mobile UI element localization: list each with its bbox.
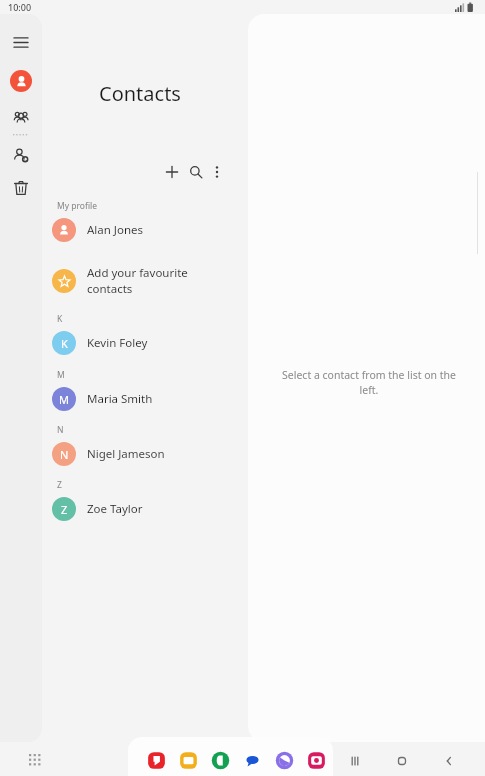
button[interactable]: More options [207,162,227,182]
button[interactable]: messages [243,751,262,770]
staticText: My profile [57,200,98,212]
staticText: Zoe Taylor [87,501,143,517]
staticText: Kevin Foley [87,335,148,351]
button[interactable]: files [179,751,198,770]
button[interactable]: Add contact [162,162,182,182]
staticText: M [57,369,65,381]
button[interactable]: internet [275,751,294,770]
button[interactable]: Trash [10,177,32,199]
button[interactable]: Recents [344,750,366,772]
staticText: K [61,336,68,351]
button[interactable]: Z [44,491,244,527]
staticText: N [57,424,64,436]
staticText: K [57,313,63,325]
button[interactable]: Add your favourite [44,263,244,299]
staticText: Select a contact from the list on the le… [279,368,459,397]
button[interactable]: Search [186,162,206,182]
button[interactable]: K [44,325,244,361]
button[interactable]: Apps [25,750,45,770]
staticText: Z [57,479,62,491]
button[interactable]: Groups [10,106,32,128]
staticText: Maria Smith [87,391,153,407]
button[interactable]: N [44,436,244,472]
staticText: contacts [87,281,133,297]
staticText: M [59,392,69,407]
button[interactable]: camera [307,751,326,770]
button[interactable]: Menu [10,32,32,54]
button[interactable]: phone [211,751,230,770]
staticText: Contacts [99,80,181,107]
button[interactable]: Manage contacts [10,144,32,166]
staticText: Add your favourite [87,265,188,281]
button[interactable]: Home [391,750,413,772]
button[interactable]: Back [438,750,460,772]
staticText: Z [61,502,68,517]
button[interactable]: notes [147,751,166,770]
staticText: 10:00 [8,1,32,13]
button[interactable]: Alan Jones [44,212,244,248]
button[interactable]: Contacts [10,70,32,92]
staticText: N [60,447,69,462]
staticText: Alan Jones [87,222,144,238]
staticText: Nigel Jameson [87,446,165,462]
button[interactable]: M [44,381,244,417]
